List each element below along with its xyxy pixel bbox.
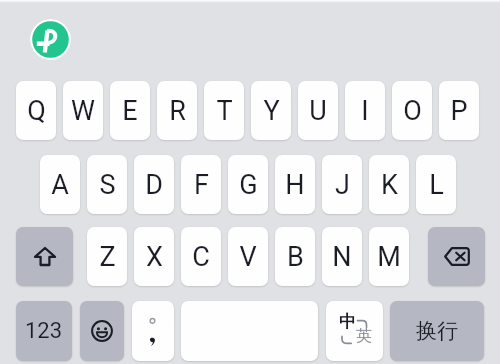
- button[interactable]: Z: [87, 227, 127, 286]
- staticText: J: [335, 169, 350, 201]
- staticText: 英: [356, 326, 372, 346]
- button[interactable]: Emoji: [80, 301, 124, 361]
- button[interactable]: Q: [16, 81, 56, 140]
- button[interactable]: App logo: [30, 19, 71, 60]
- staticText: T: [216, 95, 233, 127]
- button[interactable]: C: [181, 227, 221, 286]
- button[interactable]: U: [298, 81, 338, 140]
- staticText: P: [450, 95, 468, 127]
- button[interactable]: F: [181, 155, 221, 214]
- staticText: 换行: [416, 318, 458, 344]
- button[interactable]: B: [275, 227, 315, 286]
- button[interactable]: O: [392, 81, 432, 140]
- button[interactable]: M: [369, 227, 409, 286]
- staticText: 中: [339, 311, 356, 332]
- staticText: V: [239, 241, 257, 273]
- staticText: D: [145, 169, 163, 201]
- button[interactable]: Switch Chinese English: [326, 301, 383, 361]
- button[interactable]: W: [63, 81, 103, 140]
- button[interactable]: V: [228, 227, 268, 286]
- button[interactable]: T: [204, 81, 244, 140]
- button[interactable]: G: [228, 155, 268, 214]
- button[interactable]: N: [322, 227, 362, 286]
- staticText: I: [361, 95, 369, 127]
- staticText: B: [287, 241, 304, 273]
- button[interactable]: H: [275, 155, 315, 214]
- button[interactable]: P: [439, 81, 479, 140]
- button[interactable]: S: [87, 155, 127, 214]
- staticText: F: [194, 169, 209, 201]
- button[interactable]: J: [322, 155, 362, 214]
- staticText: R: [169, 95, 186, 127]
- button[interactable]: R: [157, 81, 197, 140]
- staticText: G: [239, 169, 258, 201]
- button[interactable]: Comma: [132, 301, 174, 361]
- button[interactable]: Shift: [16, 227, 73, 286]
- staticText: C: [192, 241, 210, 273]
- button[interactable]: X: [134, 227, 174, 286]
- button[interactable]: Enter: [390, 301, 484, 361]
- staticText: S: [99, 169, 116, 201]
- button[interactable]: D: [134, 155, 174, 214]
- staticText: O: [403, 95, 422, 127]
- staticText: H: [285, 169, 305, 201]
- button[interactable]: Backspace: [428, 227, 485, 286]
- staticText: U: [309, 95, 327, 127]
- staticText: K: [381, 169, 398, 201]
- staticText: A: [51, 169, 69, 201]
- staticText: L: [429, 169, 444, 201]
- staticText: M: [377, 241, 401, 273]
- staticText: Q: [27, 95, 46, 127]
- button[interactable]: A: [40, 155, 80, 214]
- button[interactable]: L: [416, 155, 456, 214]
- button[interactable]: Y: [251, 81, 291, 140]
- button[interactable]: I: [345, 81, 385, 140]
- staticText: E: [122, 95, 138, 127]
- staticText: Y: [263, 95, 280, 127]
- staticText: X: [146, 241, 163, 273]
- button[interactable]: Numbers: [16, 301, 72, 361]
- button[interactable]: K: [369, 155, 409, 214]
- staticText: N: [332, 241, 352, 273]
- button[interactable]: E: [110, 81, 150, 140]
- staticText: Z: [99, 241, 116, 273]
- staticText: W: [71, 95, 95, 127]
- staticText: 123: [25, 318, 63, 344]
